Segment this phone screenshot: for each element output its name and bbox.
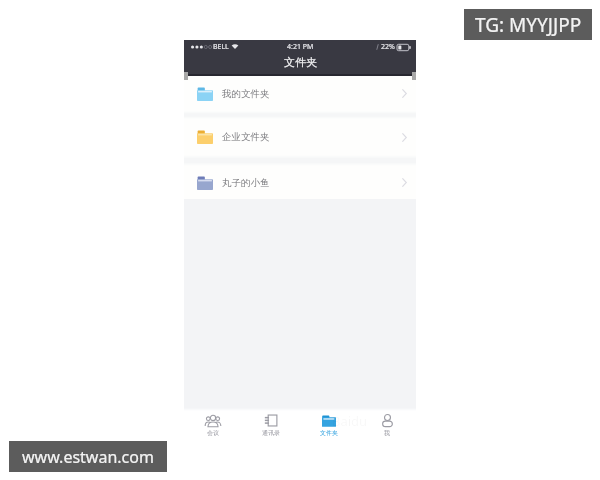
- staticText: Baidu: [332, 412, 368, 430]
- button[interactable]: 丸子的小鱼: [184, 166, 416, 199]
- staticText: 丸子的小鱼: [222, 177, 270, 189]
- staticText: 我的文件夹: [222, 88, 270, 100]
- staticText: 4:21 PM: [287, 42, 314, 52]
- staticText: 22%: [381, 42, 395, 52]
- button[interactable]: 通讯录: [242, 411, 300, 440]
- staticText: 会议: [207, 429, 219, 437]
- staticText: 文件夹: [284, 55, 317, 69]
- staticText: BELL: [213, 42, 229, 52]
- button[interactable]: 会议: [184, 411, 242, 440]
- button[interactable]: 我: [358, 411, 416, 440]
- button[interactable]: 企业文件夹: [184, 119, 416, 155]
- staticText: TG: MYYJJPP: [475, 12, 582, 38]
- staticText: www.estwan.com: [22, 446, 154, 468]
- staticText: 企业文件夹: [222, 131, 270, 143]
- button[interactable]: 文件夹: [300, 411, 358, 440]
- button[interactable]: 我的文件夹: [184, 76, 416, 111]
- staticText: 我: [384, 429, 390, 437]
- staticText: 文件夹: [320, 429, 338, 437]
- staticText: 通讯录: [262, 429, 280, 437]
